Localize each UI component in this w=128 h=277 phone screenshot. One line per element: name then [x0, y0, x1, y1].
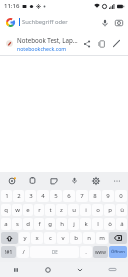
staticText: j [73, 220, 75, 228]
button[interactable]: Sticker [47, 174, 60, 187]
button[interactable]: o [92, 204, 103, 216]
staticText: Suchbegriff oder Webadress [22, 18, 98, 26]
staticText: 0 [119, 192, 123, 200]
staticText: c [49, 234, 52, 242]
button[interactable]: Startbildschirm [32, 262, 64, 277]
staticText: m [99, 234, 105, 242]
button[interactable]: c [44, 232, 56, 244]
staticText: Öffnen [111, 249, 125, 255]
button[interactable]: 7 [76, 190, 88, 202]
staticText: 8 [93, 192, 97, 200]
staticText: k [84, 220, 88, 228]
button[interactable]: Sprachsuche [98, 16, 111, 29]
staticText: . [85, 248, 87, 256]
button[interactable]: l [92, 218, 103, 230]
button[interactable]: s [12, 218, 22, 230]
button[interactable]: e [23, 204, 33, 216]
button[interactable]: p [104, 204, 115, 216]
button[interactable]: Öffnen [109, 246, 127, 258]
button[interactable]: 1 [1, 190, 12, 202]
staticText: Notebook Test, Lapt… [17, 36, 79, 44]
staticText: h [60, 220, 64, 228]
button[interactable]: 6 [63, 190, 75, 202]
button[interactable]: q [1, 204, 11, 216]
button[interactable]: w [12, 204, 22, 216]
staticText: u [72, 206, 76, 214]
button[interactable]: y [19, 232, 30, 244]
staticText: q [4, 206, 8, 214]
staticText: s [16, 220, 19, 228]
staticText: v [61, 234, 65, 242]
button[interactable]: i [80, 204, 91, 216]
staticText: z [60, 206, 63, 214]
button[interactable]: v [57, 232, 69, 244]
button[interactable]: j [68, 218, 79, 230]
button[interactable]: 0 [115, 190, 127, 202]
button[interactable]: Teilen [79, 36, 94, 51]
button[interactable]: Symbole [1, 246, 16, 258]
staticText: g [48, 220, 52, 228]
button[interactable]: Gboard [5, 174, 18, 187]
button[interactable]: x [31, 232, 43, 244]
staticText: 5 [54, 192, 58, 200]
button[interactable]: k [80, 218, 91, 230]
staticText: i [85, 206, 87, 214]
button[interactable]: h [56, 218, 67, 230]
button[interactable]: 3 [25, 190, 36, 202]
staticText: notebookcheck.com [17, 45, 67, 52]
staticText: 11:16 [4, 2, 20, 10]
button[interactable]: f [34, 218, 44, 230]
button[interactable]: u [68, 204, 79, 216]
button[interactable]: Weitere Optionen [110, 174, 123, 187]
staticText: ä [120, 220, 124, 228]
button[interactable]: d [23, 218, 33, 230]
staticText: / [22, 248, 25, 256]
button[interactable]: . [80, 246, 92, 258]
button[interactable]: 8 [89, 190, 101, 202]
button[interactable]: In neuem Tab öffnen [94, 36, 109, 51]
button[interactable]: ä [116, 218, 127, 230]
button[interactable]: Zuletzt verwendet [0, 262, 32, 277]
button[interactable]: 5 [50, 190, 62, 202]
button[interactable]: Notebook Test, Lapt… [0, 32, 128, 55]
button[interactable]: g [45, 218, 55, 230]
button[interactable]: Google Suche [3, 15, 17, 29]
button[interactable]: Eingabemethode wechseln [96, 262, 128, 277]
button[interactable]: 2 [13, 190, 24, 202]
staticText: 6 [67, 192, 71, 200]
button[interactable]: r [34, 204, 44, 216]
button[interactable]: 9 [102, 190, 114, 202]
staticText: 4 [41, 192, 45, 200]
staticText: www [95, 249, 106, 255]
button[interactable]: Tastatur schließen [64, 262, 96, 277]
staticText: ü [120, 206, 124, 214]
staticText: w [15, 206, 20, 214]
button[interactable]: m [96, 232, 108, 244]
button[interactable]: Zwischenablage [26, 174, 39, 187]
button[interactable]: n [83, 232, 95, 244]
button[interactable]: Google Lens [112, 16, 125, 29]
button[interactable]: t [45, 204, 55, 216]
button[interactable]: ö [104, 218, 115, 230]
button[interactable]: a [1, 218, 11, 230]
button[interactable]: b [70, 232, 82, 244]
staticText: o [96, 206, 100, 214]
staticText: d [26, 220, 30, 228]
staticText: x [35, 234, 39, 242]
staticText: f [38, 220, 41, 228]
button[interactable]: ü [116, 204, 127, 216]
button[interactable]: Bearbeiten [109, 36, 124, 51]
button[interactable]: 4 [37, 190, 49, 202]
button[interactable]: Spracheingabe [68, 174, 81, 187]
button[interactable]: z [56, 204, 67, 216]
button[interactable]: Löschen [109, 232, 127, 244]
staticText: 9 [106, 192, 110, 200]
button[interactable]: Leertaste [30, 246, 79, 258]
staticText: a [4, 220, 8, 228]
staticText: r [38, 206, 41, 214]
button[interactable]: Einstellungen [89, 174, 102, 187]
button[interactable]: / [17, 246, 29, 258]
button[interactable]: Suchbegriff oder Webadress [19, 14, 98, 30]
button[interactable]: Umschalttaste [1, 232, 18, 244]
button[interactable]: www [93, 246, 108, 258]
